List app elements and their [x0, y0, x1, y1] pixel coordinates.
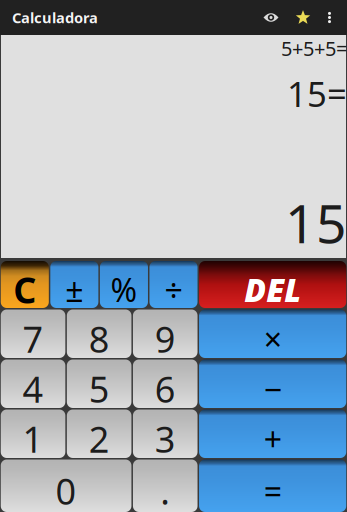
button[interactable]: ×	[199, 309, 346, 358]
staticText: %	[110, 268, 137, 311]
staticText: ×	[264, 317, 282, 360]
button[interactable]: %	[100, 261, 148, 308]
staticText: 9	[155, 315, 176, 363]
staticText: 15	[285, 187, 347, 258]
staticText: ±	[65, 268, 83, 311]
button[interactable]: 7	[1, 309, 65, 358]
button[interactable]: .	[133, 459, 197, 512]
button[interactable]: ÷	[149, 261, 198, 308]
button[interactable]: Favorite	[287, 0, 319, 35]
staticText: 3	[155, 415, 176, 463]
button[interactable]: 9	[133, 309, 197, 358]
button[interactable]: DEL	[199, 261, 346, 308]
staticText: DEL	[244, 268, 301, 311]
button[interactable]: ±	[50, 261, 98, 308]
button[interactable]: −	[199, 359, 346, 408]
button[interactable]: =	[199, 459, 346, 512]
button[interactable]: 8	[67, 309, 131, 358]
staticText: 5	[89, 365, 110, 413]
staticText: 8	[89, 315, 110, 363]
staticText: 0	[56, 467, 77, 512]
staticText: 5+5+5=	[281, 35, 347, 62]
button[interactable]: 5	[67, 359, 131, 408]
button[interactable]: C	[1, 261, 49, 308]
button[interactable]: 4	[1, 359, 65, 408]
staticText: −	[264, 367, 282, 410]
staticText: .	[160, 467, 170, 512]
staticText: ÷	[164, 268, 182, 311]
staticText: 1	[22, 415, 43, 463]
staticText: Calculadora	[12, 8, 98, 27]
staticText: =	[264, 469, 282, 512]
button[interactable]: 1	[1, 409, 65, 458]
button[interactable]: +	[199, 409, 346, 458]
button[interactable]: Show result	[255, 0, 287, 35]
staticText: 2	[89, 415, 110, 463]
staticText: 15=	[287, 71, 347, 117]
button[interactable]: More options	[319, 0, 340, 35]
staticText: 4	[22, 365, 43, 413]
button[interactable]: 2	[67, 409, 131, 458]
button[interactable]: 0	[1, 459, 131, 512]
staticText: C	[13, 266, 36, 313]
staticText: 7	[22, 315, 43, 363]
staticText: 6	[155, 365, 176, 413]
button[interactable]: 3	[133, 409, 197, 458]
button[interactable]: 6	[133, 359, 197, 408]
staticText: +	[264, 417, 282, 460]
